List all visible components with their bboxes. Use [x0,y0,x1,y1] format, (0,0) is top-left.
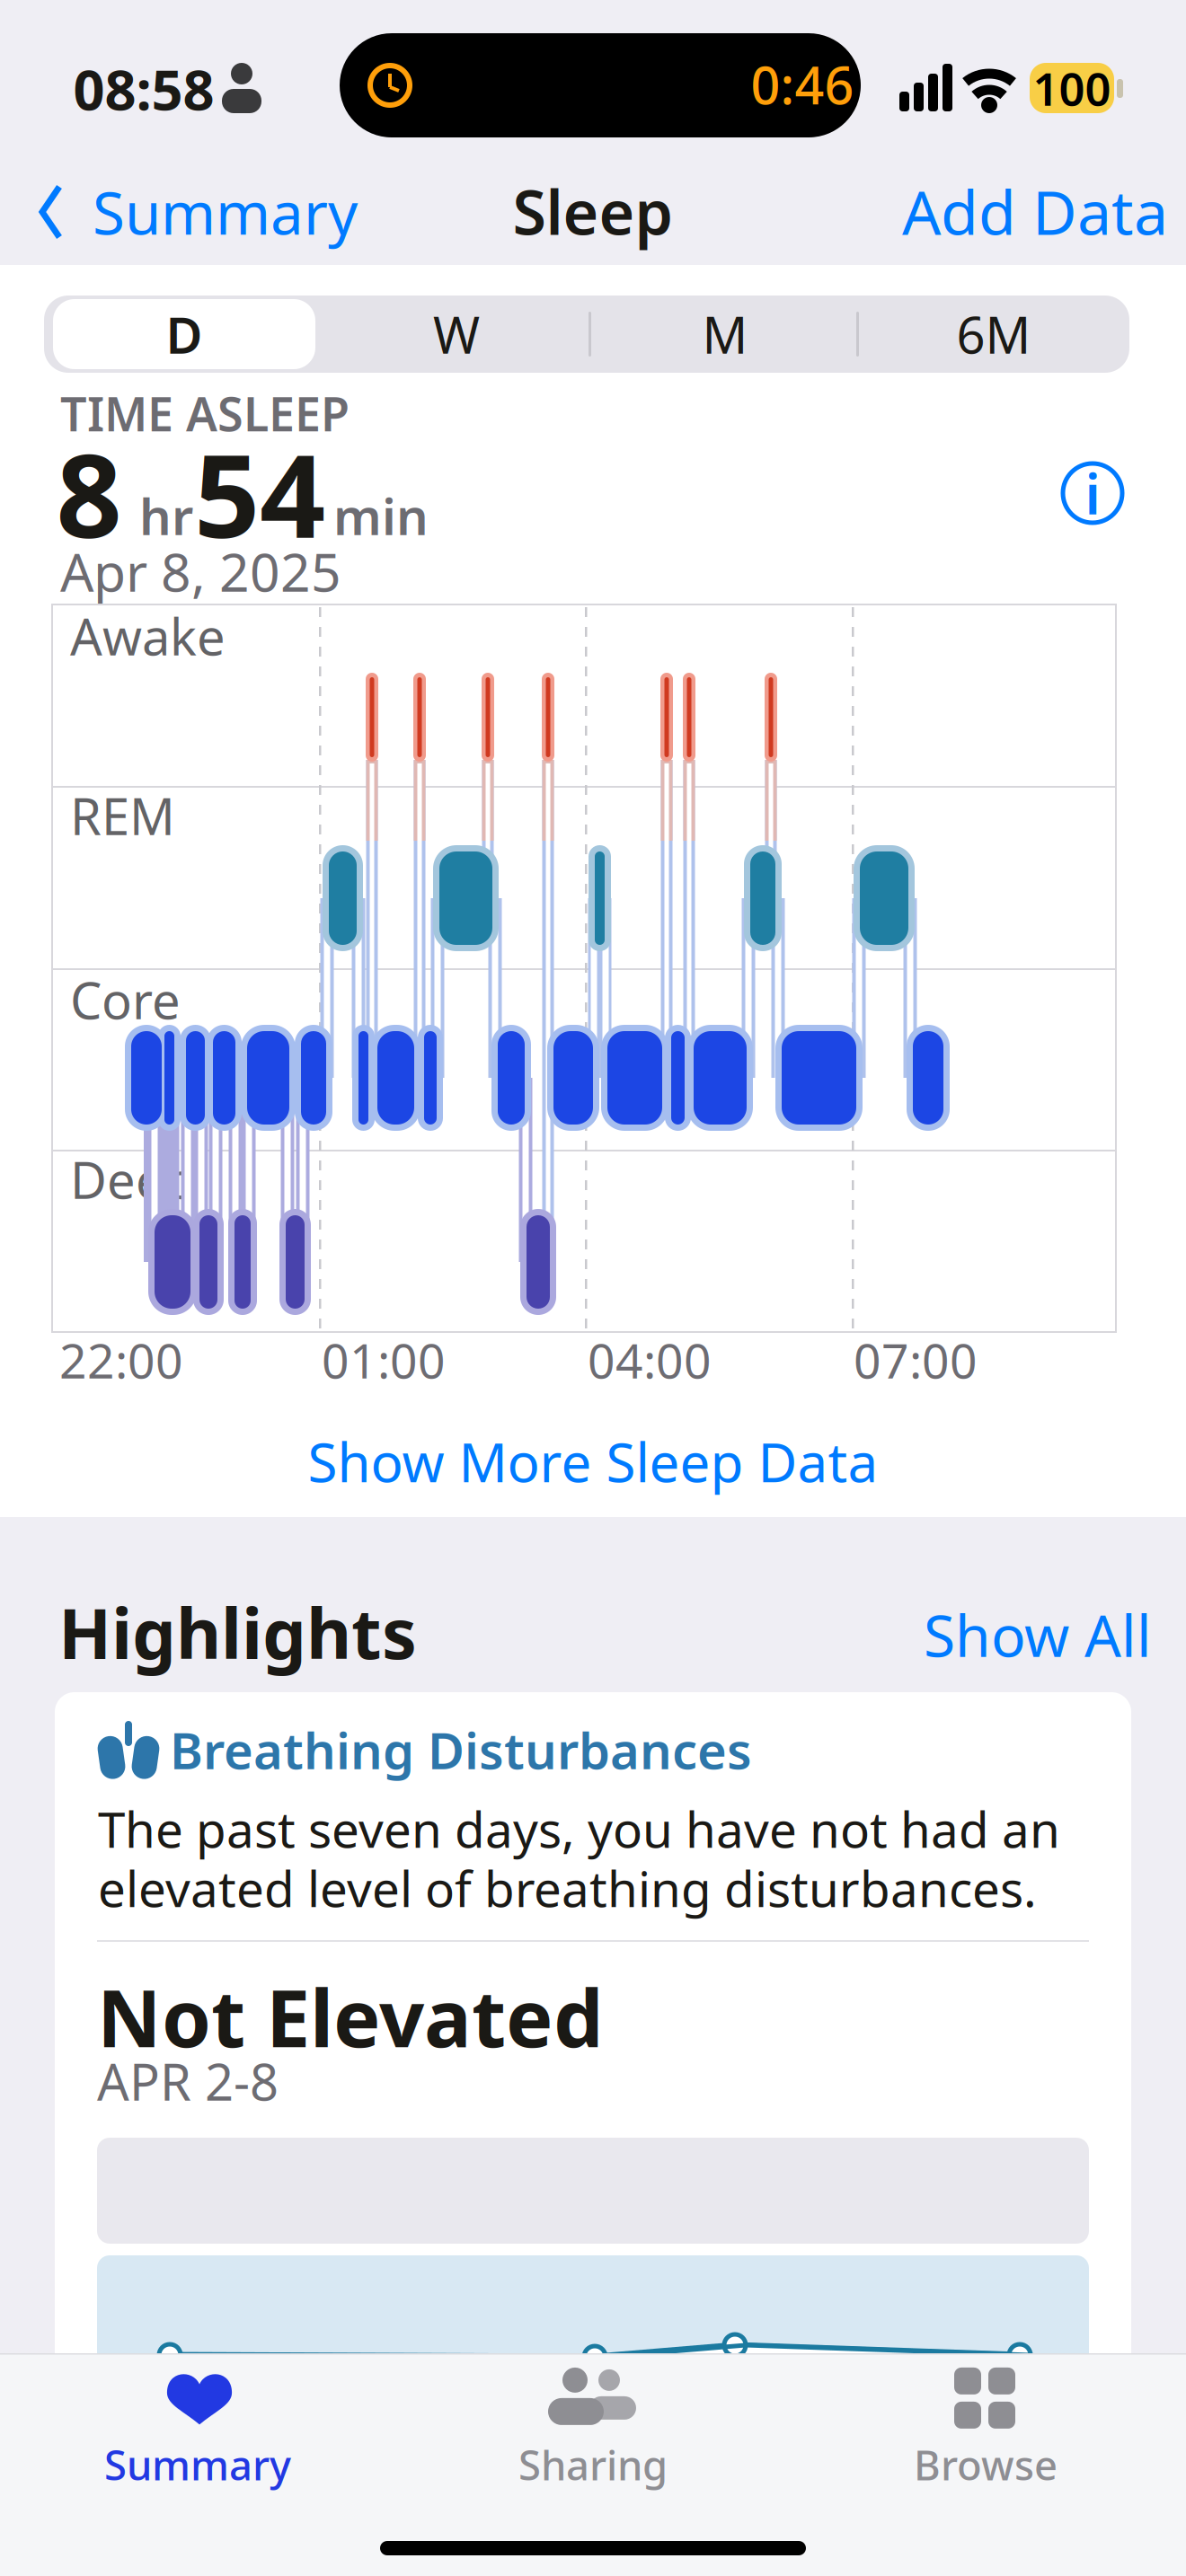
button[interactable]: Breathing Disturbances [55,1692,1131,2375]
staticText: W [433,301,480,368]
staticText: hr [139,482,193,549]
button[interactable]: Browse [851,2362,1120,2497]
staticText: Sharing [518,2438,668,2492]
staticText: Core [70,966,181,1033]
staticText: 01:00 [322,1328,446,1392]
staticText: 100 [1033,58,1111,118]
staticText: Not Elevated [97,1964,604,2069]
staticText: 04:00 [588,1328,712,1392]
staticText: 0:46 [751,50,854,119]
staticText: Summary [93,173,358,251]
staticText: elevated level of breathing disturbances… [98,1855,1037,1921]
staticText: Awake [70,603,226,669]
staticText: Add Data [902,170,1168,252]
button[interactable]: 6M [863,299,1124,369]
staticText: Summary [104,2438,291,2492]
staticText: Highlights [58,1586,417,1678]
button[interactable]: M [595,299,855,369]
staticText: Breathing Disturbances [170,1716,752,1783]
button[interactable]: Add Data [902,170,1168,252]
button[interactable]: About Time Asleep [1060,461,1125,525]
button[interactable]: Sharing [458,2362,728,2497]
staticText: M [702,301,748,368]
staticText: The past seven days, you have not had an [98,1796,1060,1861]
staticText: TIME ASLEEP [60,382,350,444]
staticText: Sleep [513,170,673,252]
staticText: Show All [924,1597,1152,1673]
staticText: APR 2-8 [97,2048,279,2115]
staticText: Apr 8, 2025 [60,536,341,606]
staticText: 07:00 [854,1328,978,1392]
staticText: min [333,482,429,549]
button[interactable]: Summary [40,183,426,241]
button[interactable]: D [53,299,315,369]
staticText: Show More Sleep Data [308,1426,878,1497]
staticText: Deep [70,1146,195,1213]
button[interactable]: W [326,299,587,369]
button[interactable]: Summary [63,2362,332,2497]
staticText: Browse [914,2438,1058,2492]
staticText: 22:00 [59,1328,183,1392]
staticText: 08:58 [73,52,214,125]
staticText: REM [70,782,175,849]
button[interactable]: Show More Sleep Data [308,1426,878,1497]
button[interactable]: Show All [924,1597,1152,1673]
staticText: 8 [56,417,122,569]
staticText: 6M [956,301,1031,368]
staticText: 54 [194,417,325,569]
staticText: D [166,301,203,368]
staticText: i [1085,457,1100,530]
